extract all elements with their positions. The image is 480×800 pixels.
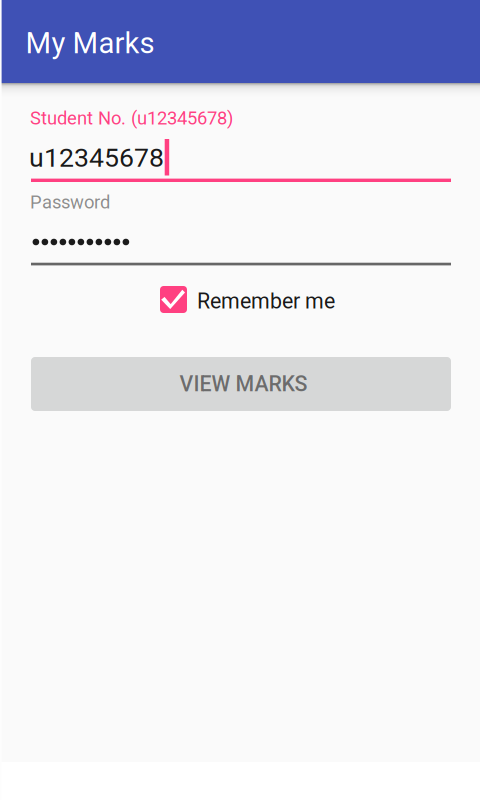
staticText: Student No. (u12345678) xyxy=(30,107,233,129)
staticText: Password xyxy=(30,191,110,213)
staticText: u12345678 xyxy=(29,142,164,173)
button[interactable]: VIEW MARKS xyxy=(31,357,451,411)
staticText: Remember me xyxy=(197,289,335,314)
button[interactable]: Student No. (u12345678) xyxy=(0,107,480,181)
button[interactable]: Remember me xyxy=(160,286,336,313)
button[interactable]: Password xyxy=(0,191,480,265)
staticText: VIEW MARKS xyxy=(179,371,307,396)
staticText: My Marks xyxy=(25,26,154,60)
